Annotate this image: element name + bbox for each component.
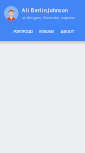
staticText: ABOUT <box>60 29 74 34</box>
staticText: ux designer, illustrator, engineer <box>22 15 76 20</box>
button[interactable]: PORTFOLIO <box>12 26 34 37</box>
button[interactable]: RESUME <box>38 26 55 37</box>
staticText: Ali Berlin Johnson <box>22 7 68 14</box>
button[interactable]: ABOUT <box>59 26 75 37</box>
staticText: PORTFOLIO <box>13 29 33 34</box>
staticText: RESUME <box>39 29 54 34</box>
